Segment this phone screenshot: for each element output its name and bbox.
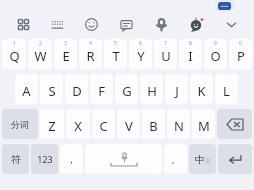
staticText: D bbox=[72, 82, 82, 100]
staticText: 2 bbox=[39, 40, 42, 47]
button[interactable]: 符 bbox=[2, 144, 29, 174]
button[interactable]: Emoji bbox=[80, 13, 102, 35]
staticText: 3 bbox=[64, 40, 67, 47]
staticText: A bbox=[22, 82, 31, 100]
staticText: L bbox=[223, 82, 230, 100]
staticText: W bbox=[34, 47, 47, 65]
button[interactable]: Enter bbox=[218, 144, 252, 174]
staticText: V bbox=[125, 117, 133, 135]
staticText: G bbox=[122, 82, 132, 100]
staticText: E bbox=[62, 47, 70, 65]
button[interactable]: M bbox=[192, 109, 215, 139]
button[interactable]: L bbox=[215, 74, 238, 104]
button[interactable]: 123 bbox=[31, 144, 58, 174]
button[interactable]: K bbox=[190, 74, 213, 104]
staticText: O bbox=[210, 47, 221, 65]
button[interactable]: S bbox=[40, 74, 63, 104]
button[interactable]: Collapse keyboard bbox=[220, 13, 242, 35]
button[interactable]: A bbox=[15, 74, 38, 104]
button[interactable]: 。 bbox=[164, 144, 187, 174]
staticText: P bbox=[237, 47, 245, 65]
button[interactable]: H bbox=[140, 74, 163, 104]
staticText: T bbox=[112, 47, 120, 65]
staticText: H bbox=[147, 82, 157, 100]
staticText: Q bbox=[9, 47, 20, 65]
staticText: 中 bbox=[195, 153, 205, 166]
staticText: 分词 bbox=[11, 119, 29, 130]
button[interactable]: 9 bbox=[204, 39, 227, 69]
staticText: 0 bbox=[239, 40, 242, 47]
staticText: J bbox=[175, 82, 179, 100]
button[interactable]: J bbox=[165, 74, 188, 104]
button[interactable]: F bbox=[90, 74, 113, 104]
button[interactable]: Z bbox=[40, 109, 64, 139]
staticText: U bbox=[161, 47, 171, 65]
staticText: S bbox=[48, 82, 56, 100]
button[interactable]: 7 bbox=[154, 39, 177, 69]
staticText: N bbox=[174, 117, 184, 135]
button[interactable]: D bbox=[65, 74, 88, 104]
button[interactable]: 3 bbox=[54, 39, 77, 69]
staticText: K bbox=[197, 82, 206, 100]
staticText: Z bbox=[48, 117, 56, 135]
button[interactable]: 8 bbox=[179, 39, 202, 69]
button[interactable]: Backspace bbox=[217, 109, 252, 139]
staticText: Y bbox=[137, 47, 145, 65]
staticText: R bbox=[86, 47, 95, 65]
button[interactable]: 2 bbox=[28, 39, 52, 69]
button[interactable]: Apps bbox=[12, 13, 34, 35]
staticText: 1 bbox=[13, 40, 16, 47]
staticText: F bbox=[98, 82, 105, 100]
button[interactable]: ， bbox=[60, 144, 83, 174]
button[interactable]: X bbox=[66, 109, 90, 139]
button[interactable]: 0 bbox=[229, 39, 252, 69]
button[interactable]: Clipboard bbox=[215, 0, 234, 12]
button[interactable]: 4 bbox=[79, 39, 102, 69]
staticText: 9 bbox=[214, 40, 217, 47]
button[interactable]: Phrases bbox=[115, 13, 137, 35]
staticText: M bbox=[198, 117, 210, 135]
staticText: 6 bbox=[139, 40, 142, 47]
staticText: 。 bbox=[171, 154, 180, 165]
button[interactable]: 1 bbox=[2, 39, 26, 69]
staticText: 4 bbox=[89, 40, 92, 47]
button[interactable]: G bbox=[115, 74, 138, 104]
button[interactable]: B bbox=[142, 109, 165, 139]
button[interactable]: Keyboard layout bbox=[46, 13, 68, 35]
staticText: 5 bbox=[114, 40, 117, 47]
button[interactable]: C bbox=[92, 109, 115, 139]
staticText: 7 bbox=[164, 40, 167, 47]
staticText: 英 bbox=[205, 157, 211, 165]
staticText: C bbox=[99, 117, 108, 135]
button[interactable]: Space, voice input bbox=[85, 144, 162, 174]
button[interactable]: Voice input bbox=[150, 13, 172, 35]
staticText: 123 bbox=[37, 153, 53, 165]
staticText: 符 bbox=[11, 153, 21, 166]
button[interactable]: 分词 bbox=[2, 109, 38, 139]
button[interactable]: 中 bbox=[189, 144, 216, 174]
staticText: B bbox=[149, 117, 158, 135]
staticText: X bbox=[74, 117, 82, 135]
button[interactable]: 5 bbox=[104, 39, 127, 69]
button[interactable]: Assistant bbox=[185, 13, 207, 35]
button[interactable]: 6 bbox=[129, 39, 152, 69]
button[interactable]: N bbox=[167, 109, 190, 139]
button[interactable]: V bbox=[117, 109, 140, 139]
staticText: 8 bbox=[189, 40, 192, 47]
staticText: I bbox=[188, 47, 193, 65]
staticText: ， bbox=[67, 154, 76, 165]
